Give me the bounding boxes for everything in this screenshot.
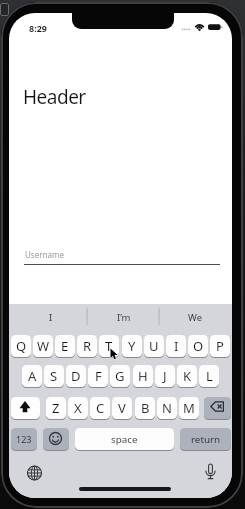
button[interactable]: Q bbox=[11, 335, 31, 357]
button[interactable]: Y bbox=[122, 335, 142, 357]
button[interactable]: space bbox=[75, 428, 174, 450]
button[interactable]: I’m bbox=[88, 308, 159, 327]
staticText: F bbox=[95, 367, 102, 385]
button[interactable]: Z bbox=[46, 397, 66, 419]
staticText: Header bbox=[23, 84, 86, 110]
button[interactable]: return bbox=[180, 428, 231, 450]
staticText: Q bbox=[16, 337, 27, 355]
staticText: X bbox=[74, 399, 82, 417]
staticText: P bbox=[216, 337, 224, 355]
button[interactable]: G bbox=[110, 365, 130, 387]
staticText: 8:29 bbox=[29, 22, 47, 34]
staticText: S bbox=[50, 367, 58, 385]
button[interactable]: N bbox=[157, 397, 177, 419]
staticText: Y bbox=[128, 337, 136, 355]
staticText: I bbox=[49, 311, 53, 324]
staticText: Z bbox=[52, 399, 60, 417]
staticText: R bbox=[83, 337, 92, 355]
button[interactable]: Username bbox=[23, 241, 219, 267]
button[interactable]: 123 bbox=[11, 428, 37, 450]
button[interactable]: T bbox=[99, 335, 119, 357]
staticText: 123 bbox=[16, 433, 32, 445]
button[interactable]: F bbox=[88, 365, 108, 387]
staticText: K bbox=[183, 367, 192, 385]
staticText: space bbox=[111, 433, 138, 446]
button[interactable]: P bbox=[210, 335, 230, 357]
staticText: W bbox=[37, 337, 50, 355]
staticText: L bbox=[206, 367, 213, 385]
staticText: T bbox=[105, 337, 113, 355]
button[interactable]: R bbox=[77, 335, 97, 357]
button[interactable]: M bbox=[179, 397, 199, 419]
staticText: O bbox=[193, 337, 204, 355]
staticText: J bbox=[163, 367, 167, 385]
button[interactable] bbox=[43, 428, 69, 450]
button[interactable]: C bbox=[90, 397, 110, 419]
button[interactable]: U bbox=[144, 335, 164, 357]
button[interactable]: I bbox=[166, 335, 186, 357]
staticText: H bbox=[138, 367, 148, 385]
button[interactable]: K bbox=[177, 365, 197, 387]
button[interactable] bbox=[25, 463, 45, 483]
button[interactable] bbox=[204, 397, 231, 419]
button[interactable]: H bbox=[133, 365, 153, 387]
button[interactable]: A bbox=[22, 365, 42, 387]
button[interactable]: S bbox=[44, 365, 64, 387]
button[interactable]: W bbox=[33, 335, 53, 357]
staticText: C bbox=[96, 399, 105, 417]
staticText: I bbox=[174, 337, 179, 355]
button[interactable]: X bbox=[68, 397, 88, 419]
button[interactable]: J bbox=[155, 365, 175, 387]
button[interactable]: B bbox=[135, 397, 155, 419]
staticText: D bbox=[71, 367, 81, 385]
button[interactable] bbox=[11, 397, 40, 419]
button[interactable]: I bbox=[15, 308, 87, 327]
staticText: G bbox=[115, 367, 125, 385]
staticText: E bbox=[61, 337, 69, 355]
staticText: return bbox=[191, 433, 221, 446]
button[interactable]: V bbox=[112, 397, 132, 419]
button[interactable]: L bbox=[199, 365, 219, 387]
button[interactable]: We bbox=[160, 308, 231, 327]
staticText: M bbox=[183, 399, 195, 417]
staticText: N bbox=[162, 399, 172, 417]
button[interactable]: E bbox=[55, 335, 75, 357]
staticText: B bbox=[141, 399, 150, 417]
staticText: U bbox=[149, 337, 159, 355]
button[interactable]: O bbox=[188, 335, 208, 357]
staticText: V bbox=[118, 399, 126, 417]
staticText: I’m bbox=[117, 311, 131, 324]
button[interactable]: D bbox=[66, 365, 86, 387]
staticText: Username bbox=[25, 249, 64, 260]
staticText: We bbox=[188, 311, 203, 324]
staticText: A bbox=[28, 367, 37, 385]
button[interactable] bbox=[200, 460, 220, 480]
